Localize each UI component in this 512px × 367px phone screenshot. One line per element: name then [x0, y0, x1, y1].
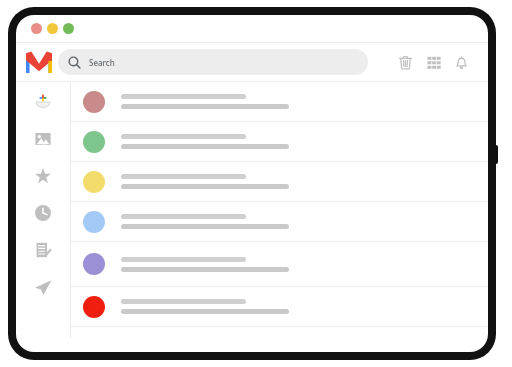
button[interactable]: Close [31, 23, 42, 34]
button[interactable]: Delete [396, 53, 414, 71]
button[interactable]: Apps [424, 53, 442, 71]
button[interactable]: Starred [31, 164, 55, 188]
button[interactable]: Gmail [26, 51, 52, 73]
button[interactable] [71, 122, 488, 161]
button[interactable]: Search [58, 49, 368, 75]
button[interactable] [71, 242, 488, 286]
button[interactable]: Snoozed [31, 201, 55, 225]
button[interactable]: Maximize [63, 23, 74, 34]
button[interactable]: Drafts [31, 238, 55, 262]
button[interactable]: Sent [31, 275, 55, 299]
button[interactable] [71, 162, 488, 201]
button[interactable]: Notifications [452, 53, 470, 71]
button[interactable]: Minimize [47, 23, 58, 34]
button[interactable] [71, 82, 488, 121]
button[interactable]: Compose [31, 90, 55, 114]
button[interactable] [71, 287, 488, 326]
button[interactable]: Photos [31, 127, 55, 151]
button[interactable] [71, 202, 488, 241]
staticText: Search [89, 57, 115, 68]
